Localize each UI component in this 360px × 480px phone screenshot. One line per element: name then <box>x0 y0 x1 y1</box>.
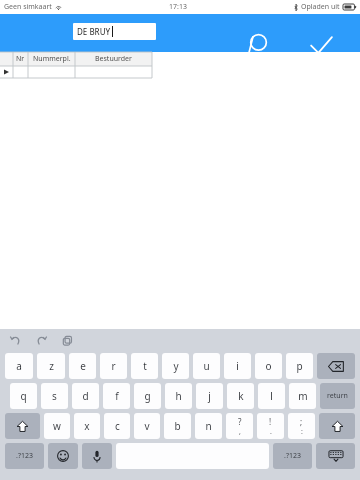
staticText: k <box>238 389 244 403</box>
staticText: d <box>82 389 89 403</box>
button[interactable]: Dictation <box>82 443 112 469</box>
staticText: DE BRUY <box>77 26 111 37</box>
button[interactable]: b <box>164 413 191 439</box>
button[interactable]: ? <box>226 413 253 439</box>
staticText: ; <box>300 416 303 427</box>
button[interactable]: v <box>134 413 160 439</box>
button[interactable]: o <box>255 353 282 379</box>
button[interactable]: d <box>72 383 99 409</box>
button[interactable]: x <box>74 413 100 439</box>
button[interactable]: Shift <box>5 413 40 439</box>
staticText: o <box>265 359 272 373</box>
staticText: Opladen uit <box>301 2 340 12</box>
staticText: q <box>20 389 27 403</box>
button[interactable]: e <box>69 353 96 379</box>
staticText: return <box>327 391 348 401</box>
staticText: l <box>270 389 273 403</box>
staticText: .?123 <box>284 451 301 461</box>
staticText: a <box>16 359 22 373</box>
staticText: n <box>205 419 212 433</box>
button[interactable]: w <box>44 413 70 439</box>
button[interactable]: a <box>5 353 33 379</box>
button[interactable]: Shift <box>319 413 355 439</box>
button[interactable]: t <box>131 353 158 379</box>
staticText: p <box>296 359 303 373</box>
staticText: Nummerpl. <box>33 54 71 64</box>
staticText: b <box>174 419 181 433</box>
staticText: g <box>144 389 151 403</box>
button[interactable]: q <box>10 383 37 409</box>
button[interactable]: return <box>320 383 355 409</box>
button[interactable]: Undo <box>8 333 22 347</box>
button[interactable]: .?123 <box>273 443 312 469</box>
staticText: r <box>111 359 116 373</box>
staticText: v <box>144 419 150 433</box>
staticText: y <box>173 359 179 373</box>
button[interactable]: f <box>103 383 130 409</box>
staticText: . <box>270 427 272 437</box>
staticText: ? <box>238 416 242 427</box>
staticText: h <box>175 389 182 403</box>
staticText: Geen simkaart <box>4 2 52 12</box>
staticText: c <box>115 419 120 433</box>
button[interactable]: u <box>193 353 220 379</box>
button[interactable] <box>317 353 355 379</box>
button[interactable]: l <box>258 383 285 409</box>
button[interactable]: r <box>100 353 127 379</box>
staticText: Bestuurder <box>95 54 132 64</box>
button[interactable]: i <box>224 353 251 379</box>
staticText: j <box>208 389 211 403</box>
staticText: u <box>203 359 210 373</box>
button[interactable]: m <box>289 383 316 409</box>
button[interactable]: y <box>162 353 189 379</box>
button[interactable]: s <box>41 383 68 409</box>
staticText: m <box>298 389 308 403</box>
button[interactable]: g <box>134 383 161 409</box>
button[interactable]: DE BRUY <box>73 23 156 40</box>
button[interactable]: Emoji <box>48 443 78 469</box>
staticText: w <box>53 419 61 433</box>
staticText: Nr <box>16 54 25 64</box>
button[interactable]: Hide keyboard <box>316 443 355 469</box>
button[interactable]: z <box>37 353 65 379</box>
button[interactable]: c <box>104 413 130 439</box>
button[interactable]: Paste <box>60 333 74 347</box>
button[interactable]: h <box>165 383 192 409</box>
staticText: s <box>52 389 57 403</box>
staticText: .?123 <box>16 451 33 461</box>
staticText: t <box>143 359 147 373</box>
button[interactable]: j <box>196 383 223 409</box>
staticText: : <box>301 427 303 437</box>
staticText: e <box>80 359 86 373</box>
button[interactable]: p <box>286 353 313 379</box>
staticText: x <box>84 419 90 433</box>
staticText: , <box>239 427 241 437</box>
staticText: f <box>115 389 119 403</box>
staticText: z <box>49 359 54 373</box>
staticText: i <box>236 359 239 373</box>
button[interactable]: ; <box>288 413 315 439</box>
staticText: ! <box>269 416 272 427</box>
button[interactable]: Redo <box>34 333 48 347</box>
button[interactable]: k <box>227 383 254 409</box>
staticText: 17:13 <box>169 2 187 12</box>
button[interactable]: .?123 <box>5 443 44 469</box>
button[interactable]: Search <box>240 27 276 63</box>
button[interactable]: ! <box>257 413 284 439</box>
button[interactable]: n <box>195 413 222 439</box>
button[interactable]: Confirm <box>303 27 339 63</box>
